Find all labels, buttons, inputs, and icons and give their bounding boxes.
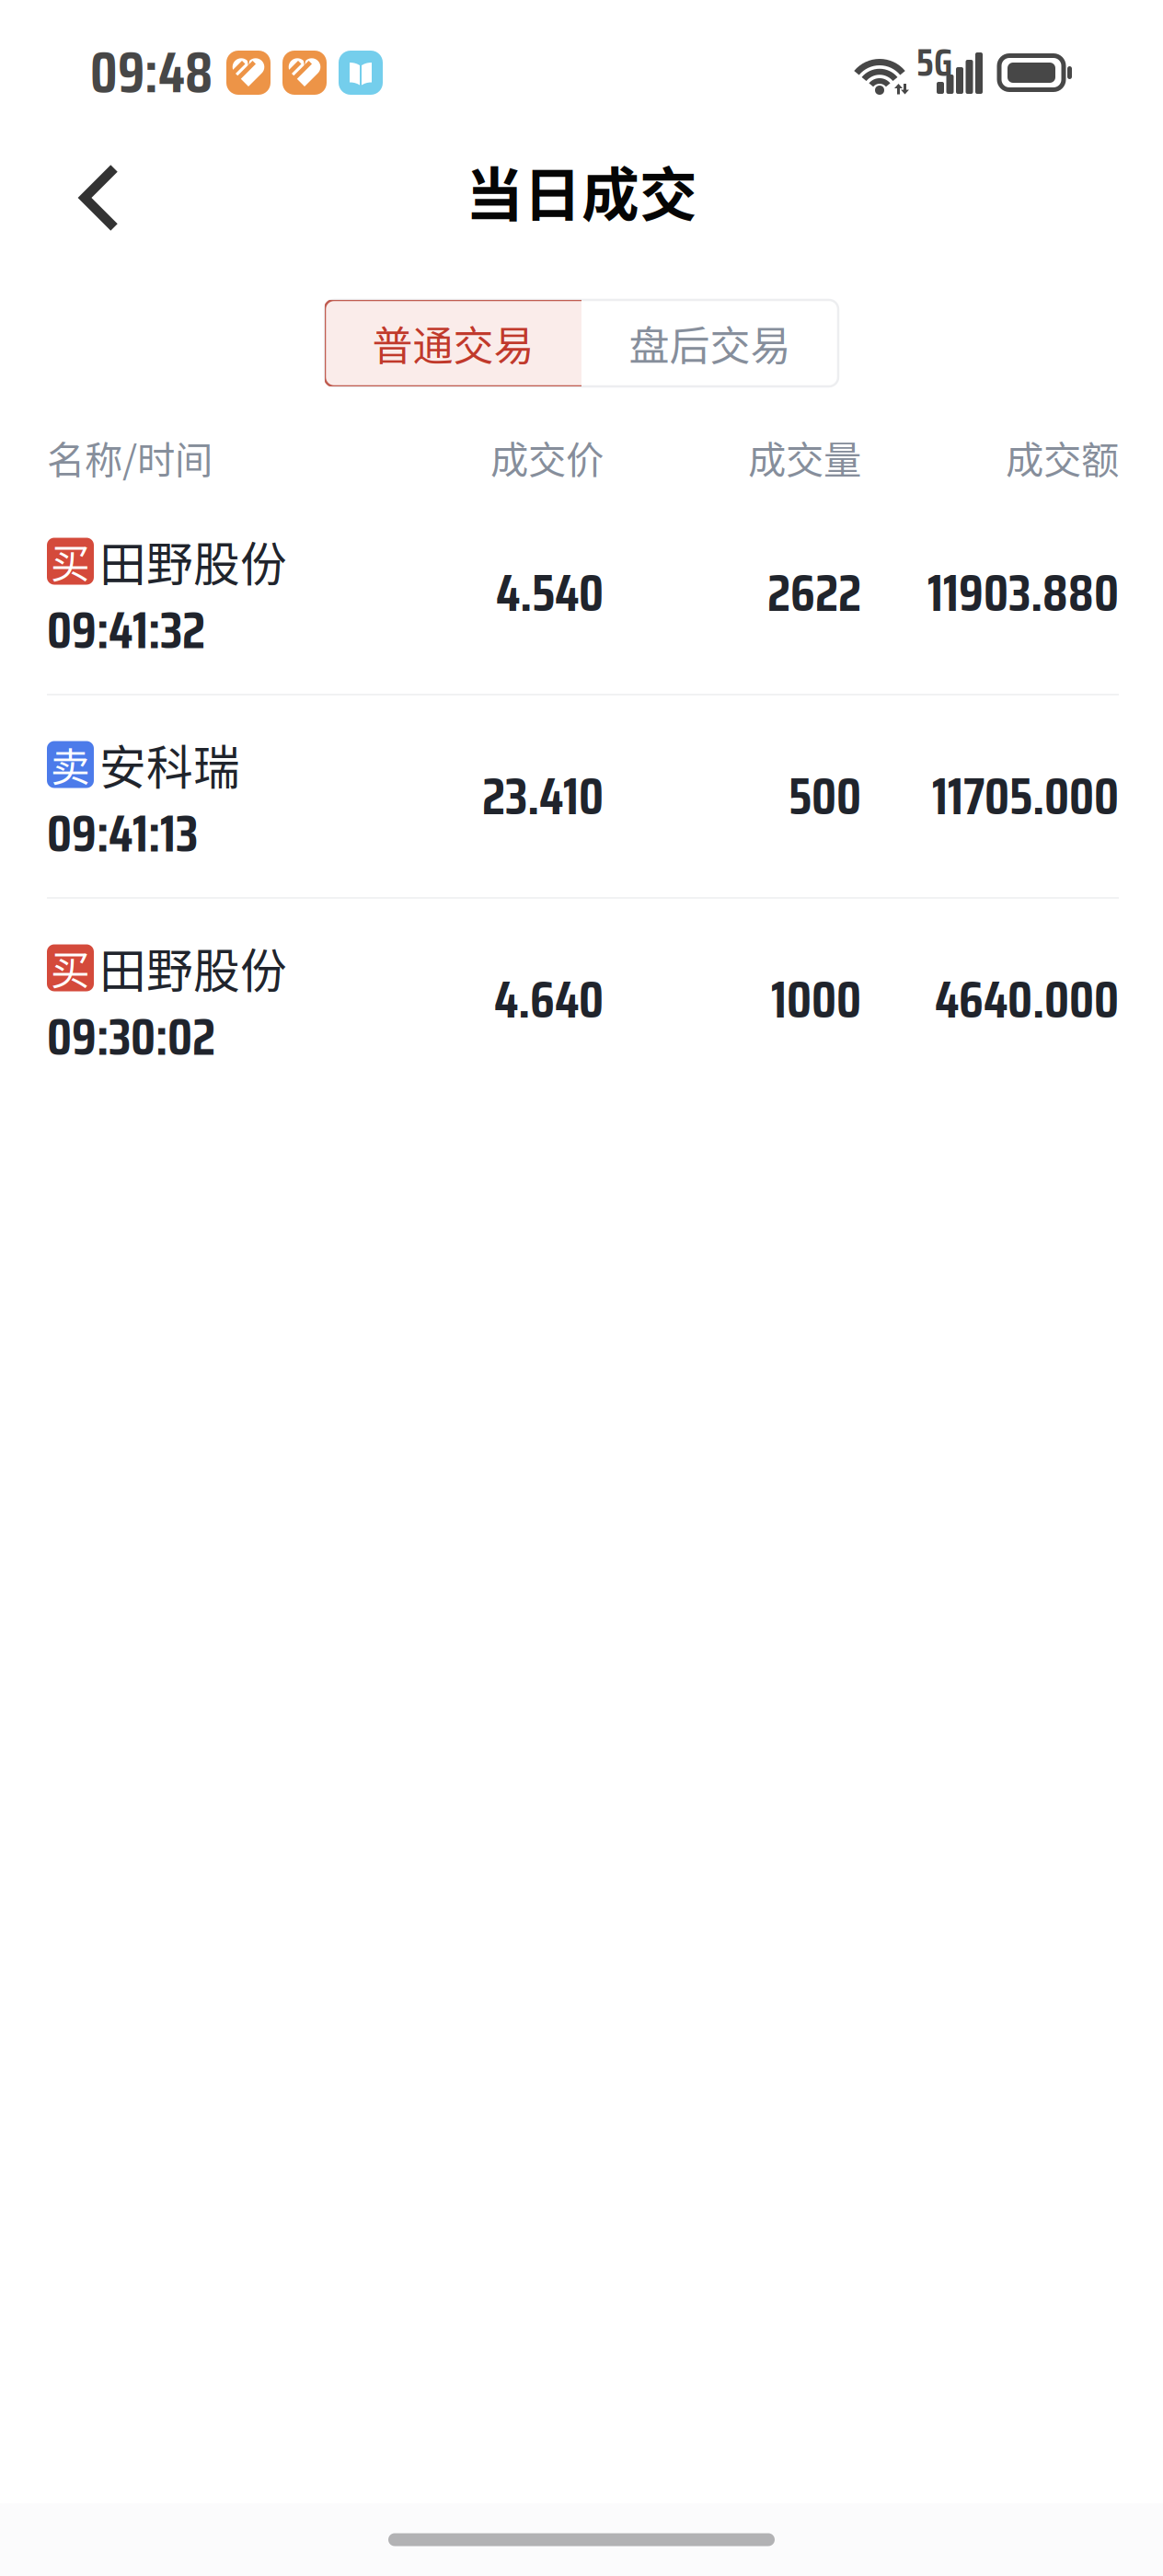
staticText: 09:48	[90, 28, 213, 117]
staticText: 成交价	[490, 430, 604, 485]
staticText: 4.640	[494, 959, 604, 1040]
staticText: 23.410	[482, 756, 604, 837]
staticText: 09:30:02	[47, 996, 215, 1077]
staticText: 500	[789, 756, 861, 837]
staticText: 当日成交	[466, 149, 697, 232]
staticText: 1000	[771, 959, 861, 1040]
button[interactable]: 买	[0, 899, 1163, 1100]
staticText: 11903.880	[927, 552, 1119, 633]
staticText: 4640.000	[935, 959, 1119, 1040]
staticText: 卖	[51, 736, 90, 793]
button[interactable]: 普通交易	[325, 300, 581, 386]
button[interactable]: 买	[0, 492, 1163, 694]
staticText: 09:41:32	[47, 590, 205, 671]
staticText: 买	[51, 533, 90, 590]
staticText: 盘后交易	[629, 314, 791, 372]
staticText: 田野股份	[99, 934, 287, 1002]
button[interactable]: 卖	[0, 696, 1163, 897]
staticText: 名称/时间	[47, 430, 213, 485]
button[interactable]: 盘后交易	[581, 300, 838, 386]
staticText: 4.540	[496, 552, 604, 633]
staticText: 09:41:13	[47, 793, 198, 874]
staticText: 5G	[916, 33, 952, 93]
staticText: 普通交易	[372, 314, 534, 372]
button[interactable]: 返回	[0, 130, 166, 251]
staticText: 成交量	[748, 430, 861, 485]
staticText: 成交额	[1006, 430, 1119, 485]
staticText: 田野股份	[99, 527, 287, 595]
staticText: 2622	[767, 552, 861, 633]
staticText: 11705.000	[932, 756, 1119, 837]
staticText: 买	[51, 939, 90, 996]
staticText: 安科瑞	[99, 731, 240, 798]
